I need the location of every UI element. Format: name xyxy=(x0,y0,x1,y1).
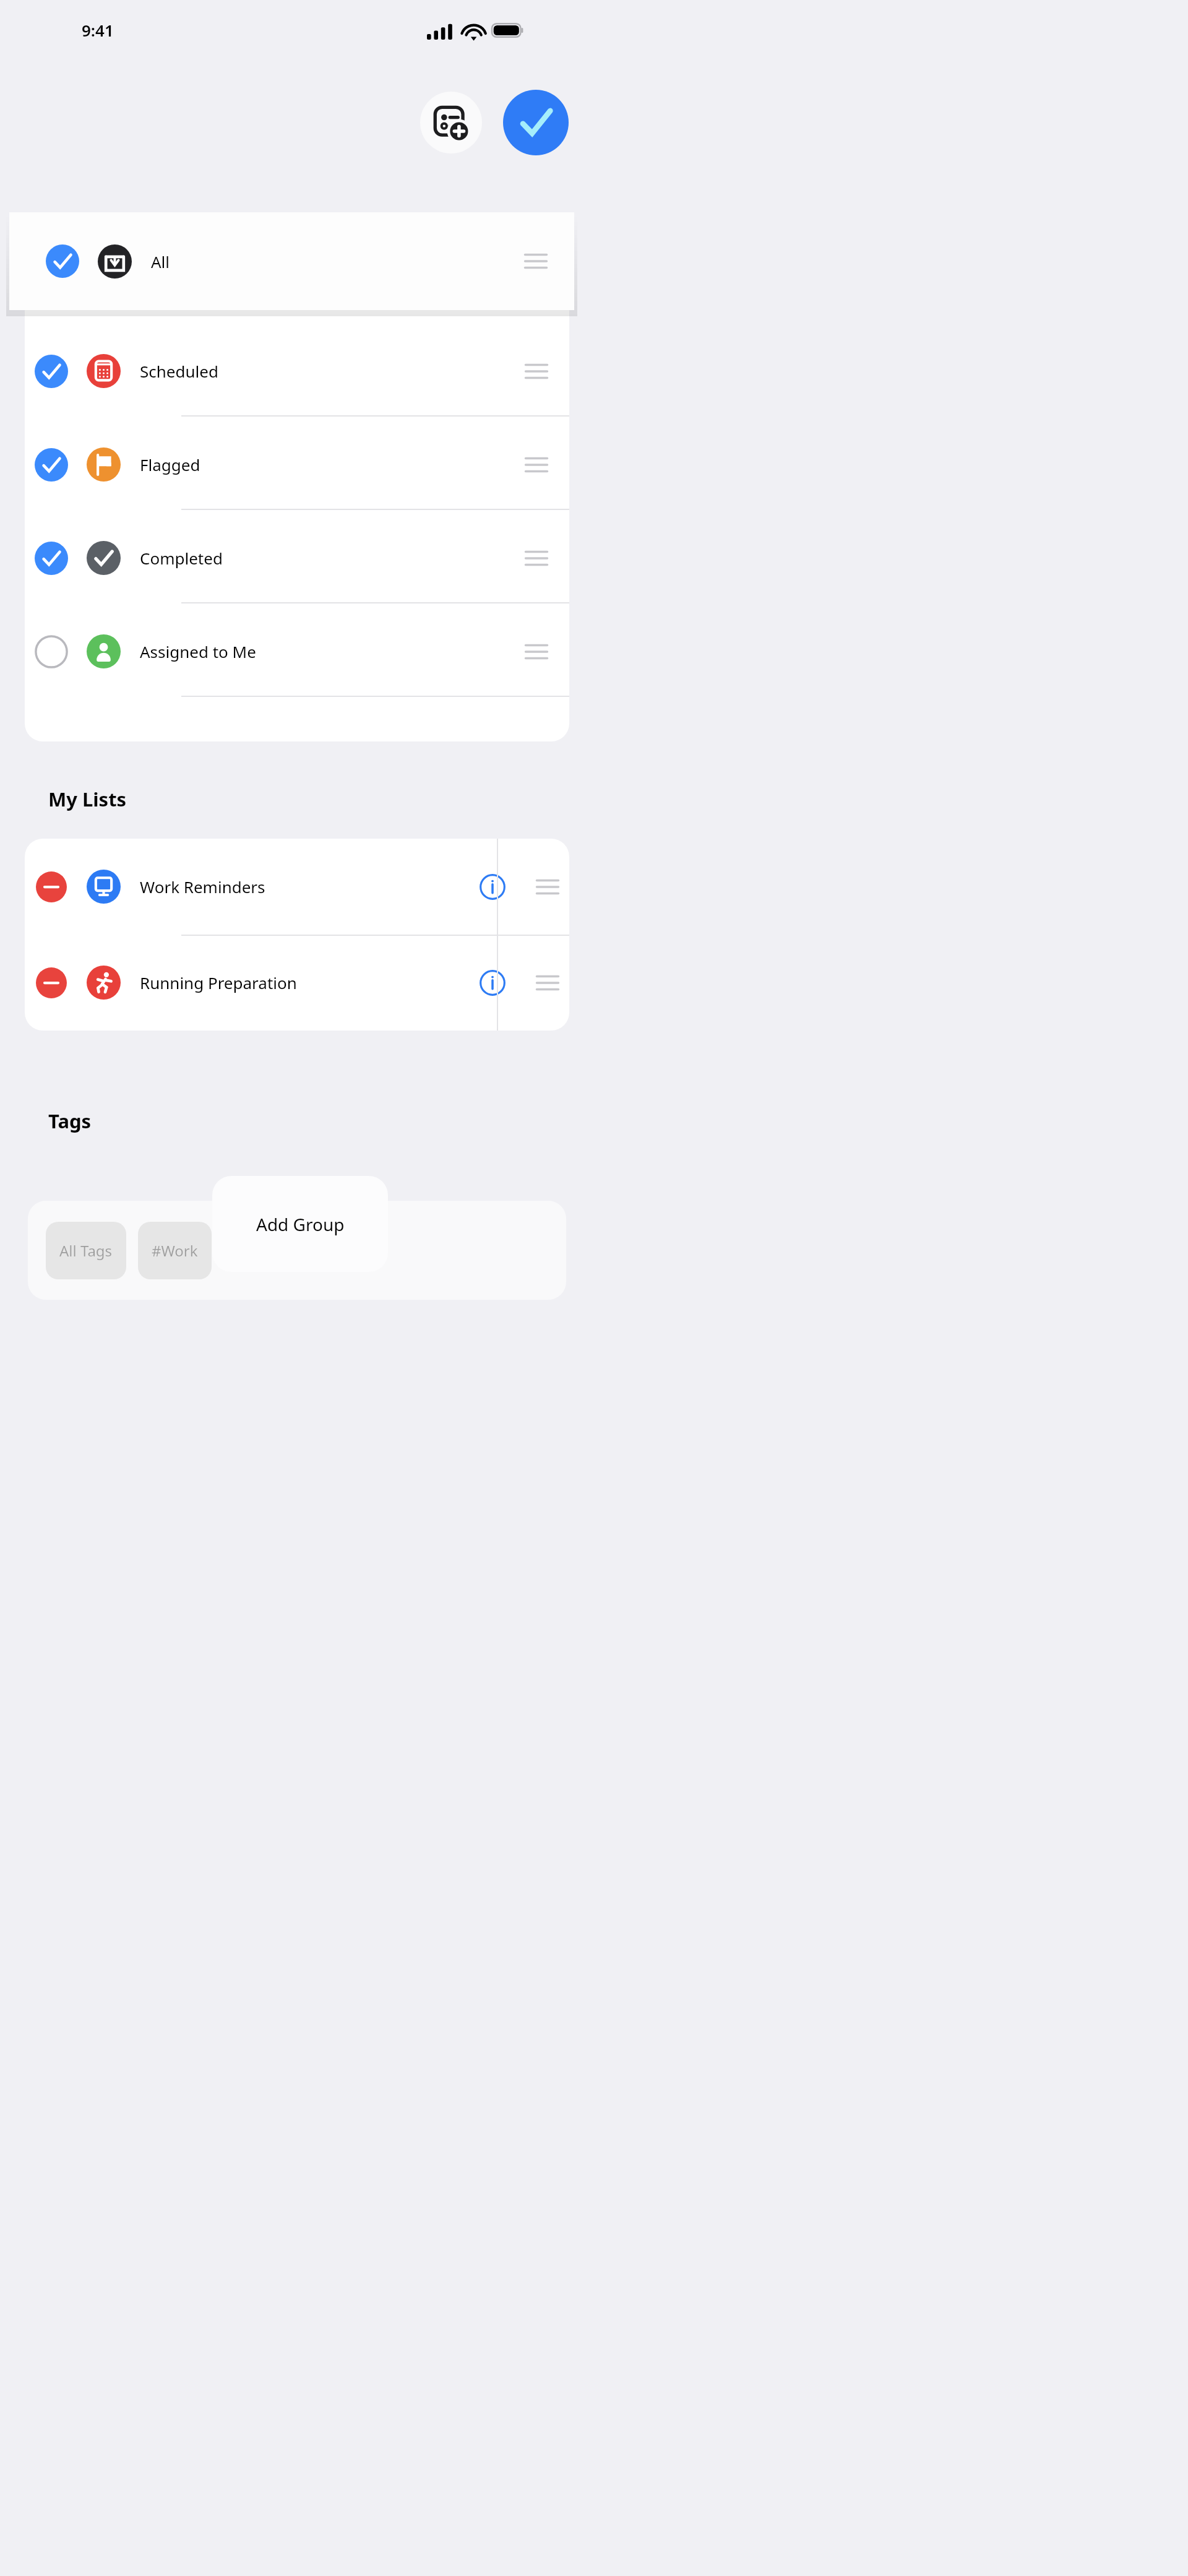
button[interactable]: Add Group xyxy=(212,1176,388,1272)
staticText: Completed xyxy=(140,547,223,569)
staticText: Tags xyxy=(48,1108,92,1134)
other: Delete xyxy=(35,966,68,1000)
other: Info xyxy=(478,872,507,902)
button[interactable]: All xyxy=(9,212,574,310)
button[interactable]: Done xyxy=(503,90,569,155)
staticText: Assigned to Me xyxy=(140,641,256,662)
staticText: 9:41 xyxy=(82,19,114,41)
button[interactable]: Delete xyxy=(25,935,569,1031)
button[interactable]: All Tags xyxy=(46,1222,126,1279)
button[interactable]: Add List xyxy=(420,92,482,153)
button[interactable]: #Work xyxy=(138,1222,212,1279)
button[interactable]: Today xyxy=(25,231,569,324)
staticText: Today xyxy=(140,267,185,288)
staticText: My Lists xyxy=(48,786,127,812)
other: Info xyxy=(478,968,507,998)
button[interactable]: Flagged xyxy=(25,418,569,511)
staticText: Work Reminders xyxy=(140,876,265,897)
button[interactable]: All Tags xyxy=(28,1201,566,1300)
staticText: Running Preparation xyxy=(140,972,297,993)
button[interactable]: Completed xyxy=(25,511,569,605)
staticText: #Work xyxy=(152,1240,198,1261)
staticText: All Tags xyxy=(59,1240,113,1261)
staticText: All xyxy=(151,251,170,272)
other: Delete xyxy=(35,870,68,904)
staticText: Flagged xyxy=(140,454,200,475)
staticText: Scheduled xyxy=(140,360,218,382)
button[interactable]: Scheduled xyxy=(25,324,569,418)
staticText: Add Group xyxy=(256,1212,345,1236)
button[interactable]: Delete xyxy=(25,839,569,935)
button[interactable]: Assigned to Me xyxy=(25,605,569,698)
